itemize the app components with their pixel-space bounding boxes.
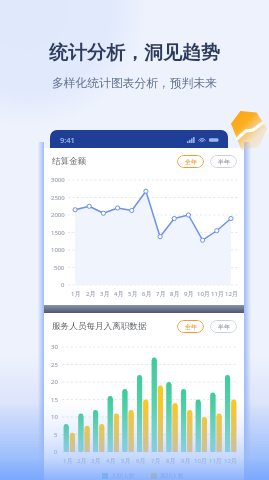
staticText: 多样化统计图表分析，预判未来 <box>0 76 269 91</box>
staticText: 10月 <box>194 457 207 465</box>
button[interactable]: 半年 <box>210 320 237 333</box>
staticText: 3月 <box>91 457 101 465</box>
staticText: 离职人数 <box>160 472 184 480</box>
staticText: 4月 <box>106 457 116 465</box>
staticText: 9月 <box>181 457 191 465</box>
staticText: 0 <box>54 448 58 456</box>
button[interactable]: 全年 <box>177 155 204 168</box>
staticText: 7月 <box>151 457 161 465</box>
staticText: 5月 <box>121 457 131 465</box>
staticText: 2月 <box>86 290 96 298</box>
staticText: 6月 <box>136 457 146 465</box>
staticText: 10月 <box>197 290 210 298</box>
staticText: 0 <box>61 281 65 289</box>
staticText: 3月 <box>100 290 110 298</box>
staticText: 全年 <box>185 158 197 166</box>
staticText: 半年 <box>218 158 230 166</box>
staticText: 8月 <box>166 457 176 465</box>
staticText: 12月 <box>225 290 238 298</box>
staticText: 1500 <box>51 229 65 237</box>
staticText: 9月 <box>184 290 194 298</box>
staticText: 2000 <box>51 211 65 219</box>
staticText: 8月 <box>170 290 180 298</box>
staticText: 1000 <box>51 246 65 254</box>
staticText: 4月 <box>114 290 124 298</box>
staticText: 11月 <box>209 457 222 465</box>
staticText: 统计分析，洞见趋势 <box>0 41 269 65</box>
staticText: 结算金额 <box>52 156 87 167</box>
staticText: 6月 <box>142 290 152 298</box>
button[interactable]: Statistics <box>231 111 267 150</box>
staticText: 15 <box>51 396 58 404</box>
staticText: 20 <box>51 378 58 386</box>
staticText: 12月 <box>224 457 237 465</box>
staticText: 半年 <box>218 323 230 331</box>
staticText: 入职人数 <box>111 472 135 480</box>
staticText: 10 <box>51 413 58 421</box>
staticText: 1月 <box>63 457 73 465</box>
staticText: 全年 <box>185 323 197 331</box>
button[interactable]: 半年 <box>210 155 237 168</box>
staticText: 500 <box>54 264 65 272</box>
staticText: 25 <box>51 361 58 369</box>
staticText: 7月 <box>156 290 166 298</box>
staticText: 1月 <box>71 290 81 298</box>
staticText: 2500 <box>51 194 65 202</box>
staticText: 9:41 <box>60 135 75 145</box>
button[interactable]: 全年 <box>177 320 204 333</box>
staticText: 服务人员每月入离职数据 <box>52 321 147 332</box>
staticText: 5 <box>54 431 58 439</box>
staticText: 2月 <box>77 457 87 465</box>
staticText: 5月 <box>128 290 138 298</box>
staticText: 11月 <box>211 290 224 298</box>
staticText: 3000 <box>51 176 65 184</box>
staticText: 30 <box>51 343 58 351</box>
